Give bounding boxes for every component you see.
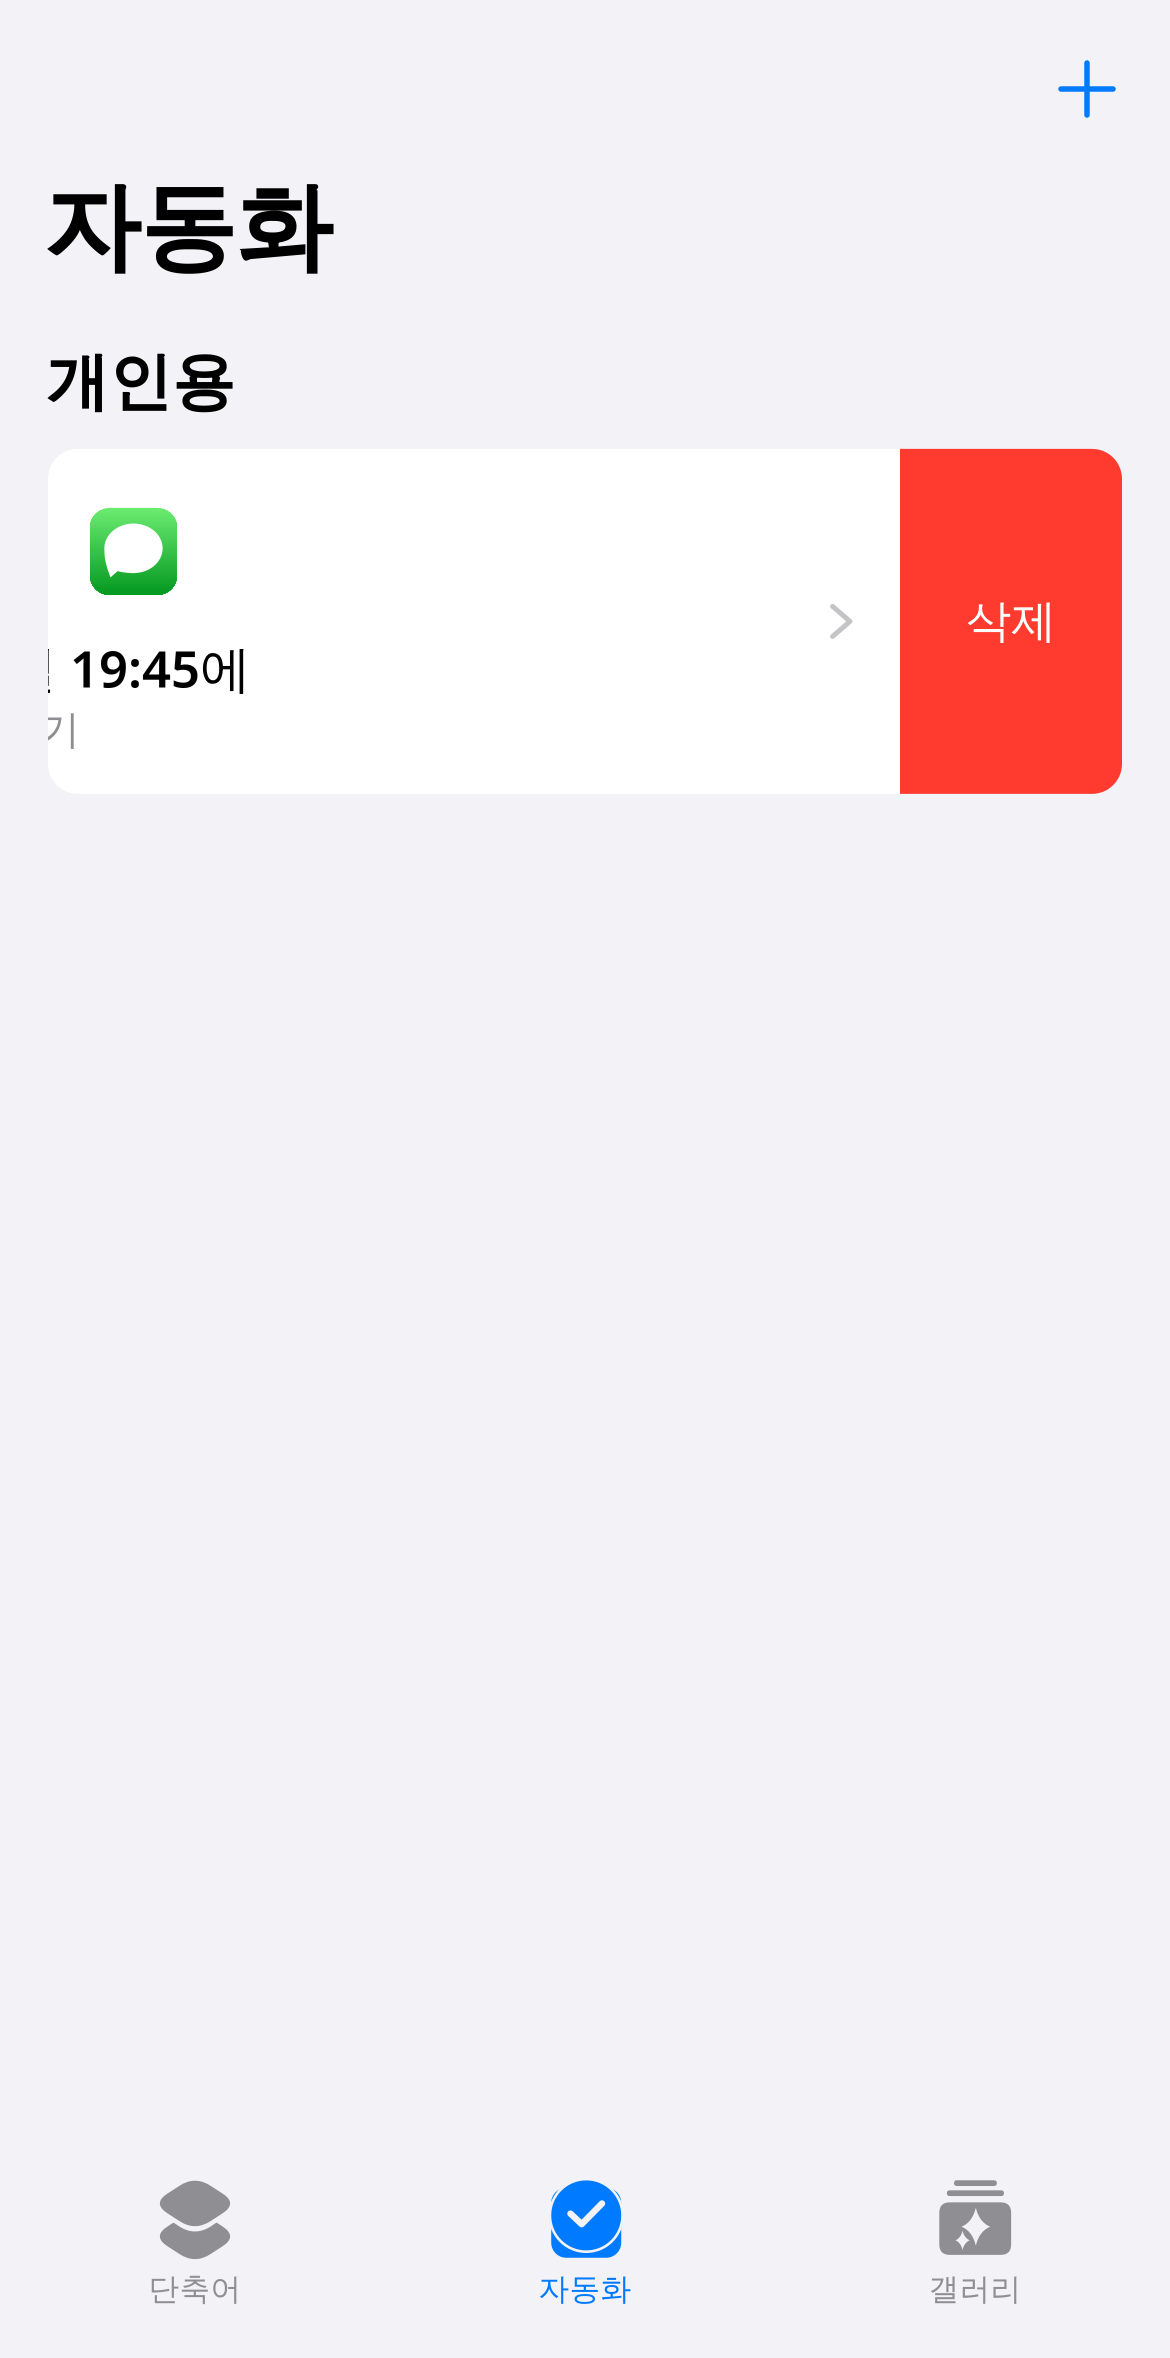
button[interactable]: New Automation: [1039, 41, 1135, 137]
button[interactable]: 갤러리: [780, 2168, 1170, 2308]
button[interactable]: 삭제: [900, 449, 1122, 794]
staticText: 개인용: [46, 344, 235, 421]
staticText: 매일 19:45에: [0, 634, 251, 701]
staticText: 갤러리: [928, 2270, 1021, 2308]
staticText: 단축어: [148, 2270, 241, 2308]
staticText: 자동화: [44, 169, 332, 287]
staticText: 자동화: [538, 2270, 631, 2308]
button[interactable]: 자동화: [390, 2168, 780, 2308]
staticText: 메시지 보내기: [0, 705, 80, 755]
button[interactable]: 매일 19:45에: [48, 449, 900, 794]
staticText: 삭제: [966, 593, 1056, 649]
button[interactable]: 단축어: [0, 2168, 390, 2308]
